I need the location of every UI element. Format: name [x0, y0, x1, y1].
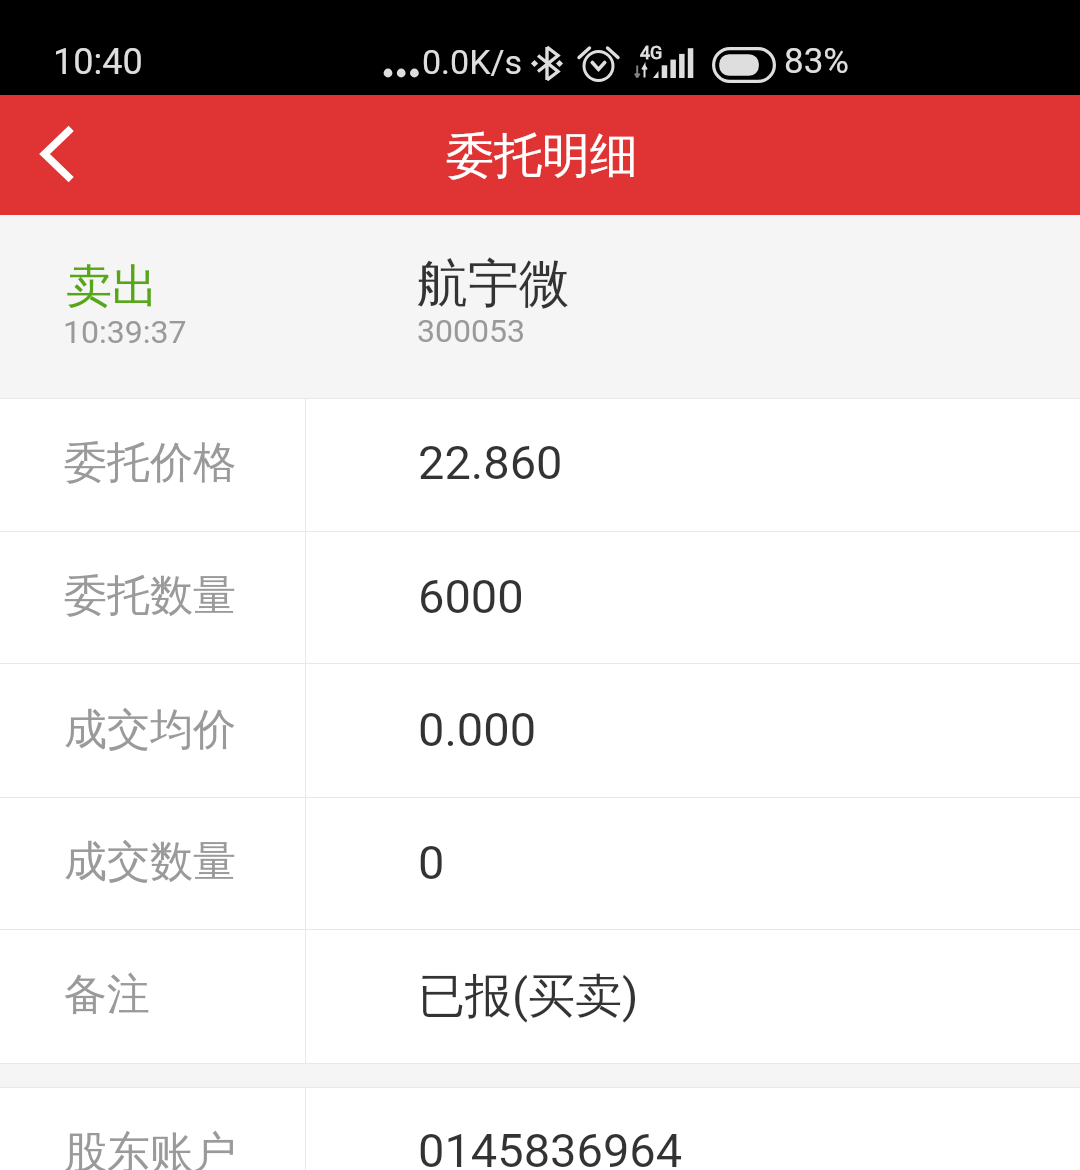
staticText: 股东账户: [64, 1126, 236, 1170]
staticText: 0145836964: [418, 1123, 683, 1170]
button[interactable]: 成交均价: [0, 663, 1080, 797]
button[interactable]: 备注: [0, 929, 1080, 1063]
staticText: 委托价格: [64, 436, 236, 490]
button[interactable]: 成交数量: [0, 797, 1080, 929]
staticText: 委托明细: [446, 126, 638, 186]
staticText: 0: [418, 835, 445, 890]
staticText: 4G: [640, 42, 663, 63]
staticText: 0.0K/s: [422, 42, 523, 82]
button[interactable]: 卖出: [0, 215, 1080, 399]
staticText: 6000: [418, 569, 524, 624]
button[interactable]: 委托数量: [0, 531, 1080, 663]
button[interactable]: Back: [0, 95, 112, 215]
staticText: 10:40: [53, 41, 143, 83]
staticText: 10:39:37: [63, 313, 187, 351]
staticText: 0.000: [418, 702, 537, 757]
staticText: 航宇微: [417, 252, 570, 316]
staticText: 成交均价: [64, 703, 236, 757]
staticText: 83%: [784, 41, 849, 82]
button[interactable]: 股东账户: [0, 1088, 1080, 1170]
staticText: 成交数量: [64, 835, 236, 889]
staticText: 备注: [64, 968, 150, 1022]
staticText: 已报(买卖): [418, 967, 639, 1026]
button[interactable]: 委托价格: [0, 399, 1080, 531]
staticText: 22.860: [418, 435, 563, 490]
staticText: 卖出: [66, 258, 158, 316]
staticText: 委托数量: [64, 569, 236, 623]
staticText: 300053: [417, 312, 525, 350]
